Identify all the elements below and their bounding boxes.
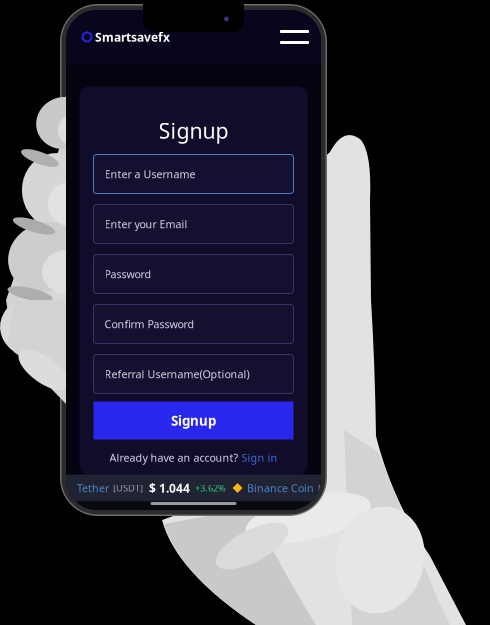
staticText: $ 1.044 [149, 480, 190, 496]
button[interactable]: Enter a Username [93, 154, 293, 193]
staticText: Binance Coin [247, 481, 314, 495]
staticText: [BNB] [318, 482, 343, 494]
staticText: Signup [171, 412, 216, 429]
staticText: Smartsavefx [95, 29, 170, 45]
staticText: $ 2 [349, 480, 366, 496]
button[interactable]: Sign in [241, 450, 277, 465]
staticText: Already have an account? [109, 450, 238, 465]
staticText: +3.62% [195, 482, 226, 494]
button[interactable]: Menu [278, 22, 311, 52]
button[interactable]: Enter your Email [93, 204, 293, 243]
staticText: Enter a Username [104, 167, 195, 181]
staticText: Signup [158, 116, 228, 145]
staticText: Enter your Email [104, 217, 187, 231]
staticText: Confirm Password [104, 317, 194, 331]
button[interactable]: Confirm Password [93, 304, 293, 343]
staticText: [USDT] [113, 482, 143, 494]
staticText: Tether [77, 481, 109, 495]
button[interactable]: Referral Username(Optional) [93, 354, 293, 393]
staticText: Sign in [241, 450, 277, 465]
button[interactable]: Password [93, 254, 293, 293]
staticText: Password [104, 267, 151, 281]
button[interactable]: Signup [93, 401, 293, 439]
staticText: Referral Username(Optional) [104, 367, 249, 381]
